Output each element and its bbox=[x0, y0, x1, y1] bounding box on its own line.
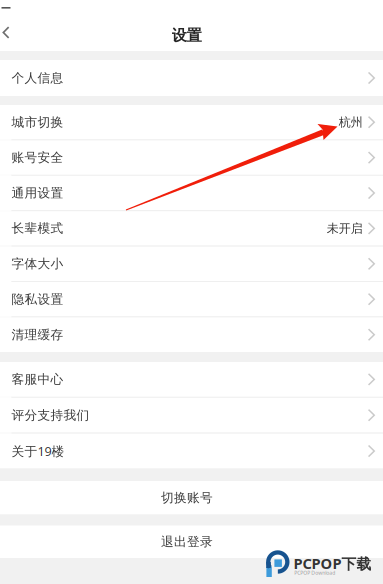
button[interactable]: 评分支持我们 bbox=[0, 398, 383, 433]
button[interactable]: 字体大小 bbox=[0, 247, 383, 281]
staticText: PCPOP Download bbox=[294, 569, 335, 576]
staticText: 客服中心 bbox=[11, 371, 63, 387]
staticText: 长辈模式 bbox=[11, 220, 63, 236]
staticText: 退出登录 bbox=[161, 534, 213, 550]
button[interactable]: Back bbox=[0, 20, 383, 51]
staticText: 设置 bbox=[171, 26, 201, 45]
staticText: 切换账号 bbox=[161, 490, 213, 506]
staticText: 未开启 bbox=[327, 221, 363, 236]
button[interactable]: 隐私设置 bbox=[0, 282, 383, 316]
button[interactable]: 客服中心 bbox=[0, 362, 383, 397]
button[interactable]: 退出登录 bbox=[0, 525, 383, 558]
button[interactable]: 个人信息 bbox=[0, 60, 383, 96]
staticText: 字体大小 bbox=[11, 256, 63, 272]
button[interactable]: 长辈模式 bbox=[0, 211, 383, 246]
button[interactable]: 切换账号 bbox=[0, 481, 383, 514]
staticText: 个人信息 bbox=[11, 70, 63, 86]
staticText: 杭州 bbox=[339, 115, 363, 130]
staticText: 关于19楼 bbox=[11, 442, 64, 460]
staticText: 评分支持我们 bbox=[11, 407, 89, 423]
staticText: PCPOP下载 bbox=[294, 553, 372, 573]
button[interactable]: 清理缓存 bbox=[0, 317, 383, 352]
staticText: 通用设置 bbox=[11, 185, 63, 201]
staticText: 清理缓存 bbox=[11, 327, 63, 343]
button[interactable]: 通用设置 bbox=[0, 176, 383, 210]
staticText: 账号安全 bbox=[11, 150, 63, 166]
button[interactable]: 账号安全 bbox=[0, 140, 383, 175]
staticText: 城市切换 bbox=[11, 114, 63, 130]
button[interactable]: 城市切换 bbox=[0, 105, 383, 139]
button[interactable]: 关于19楼 bbox=[0, 434, 383, 468]
staticText: 隐私设置 bbox=[11, 291, 63, 307]
